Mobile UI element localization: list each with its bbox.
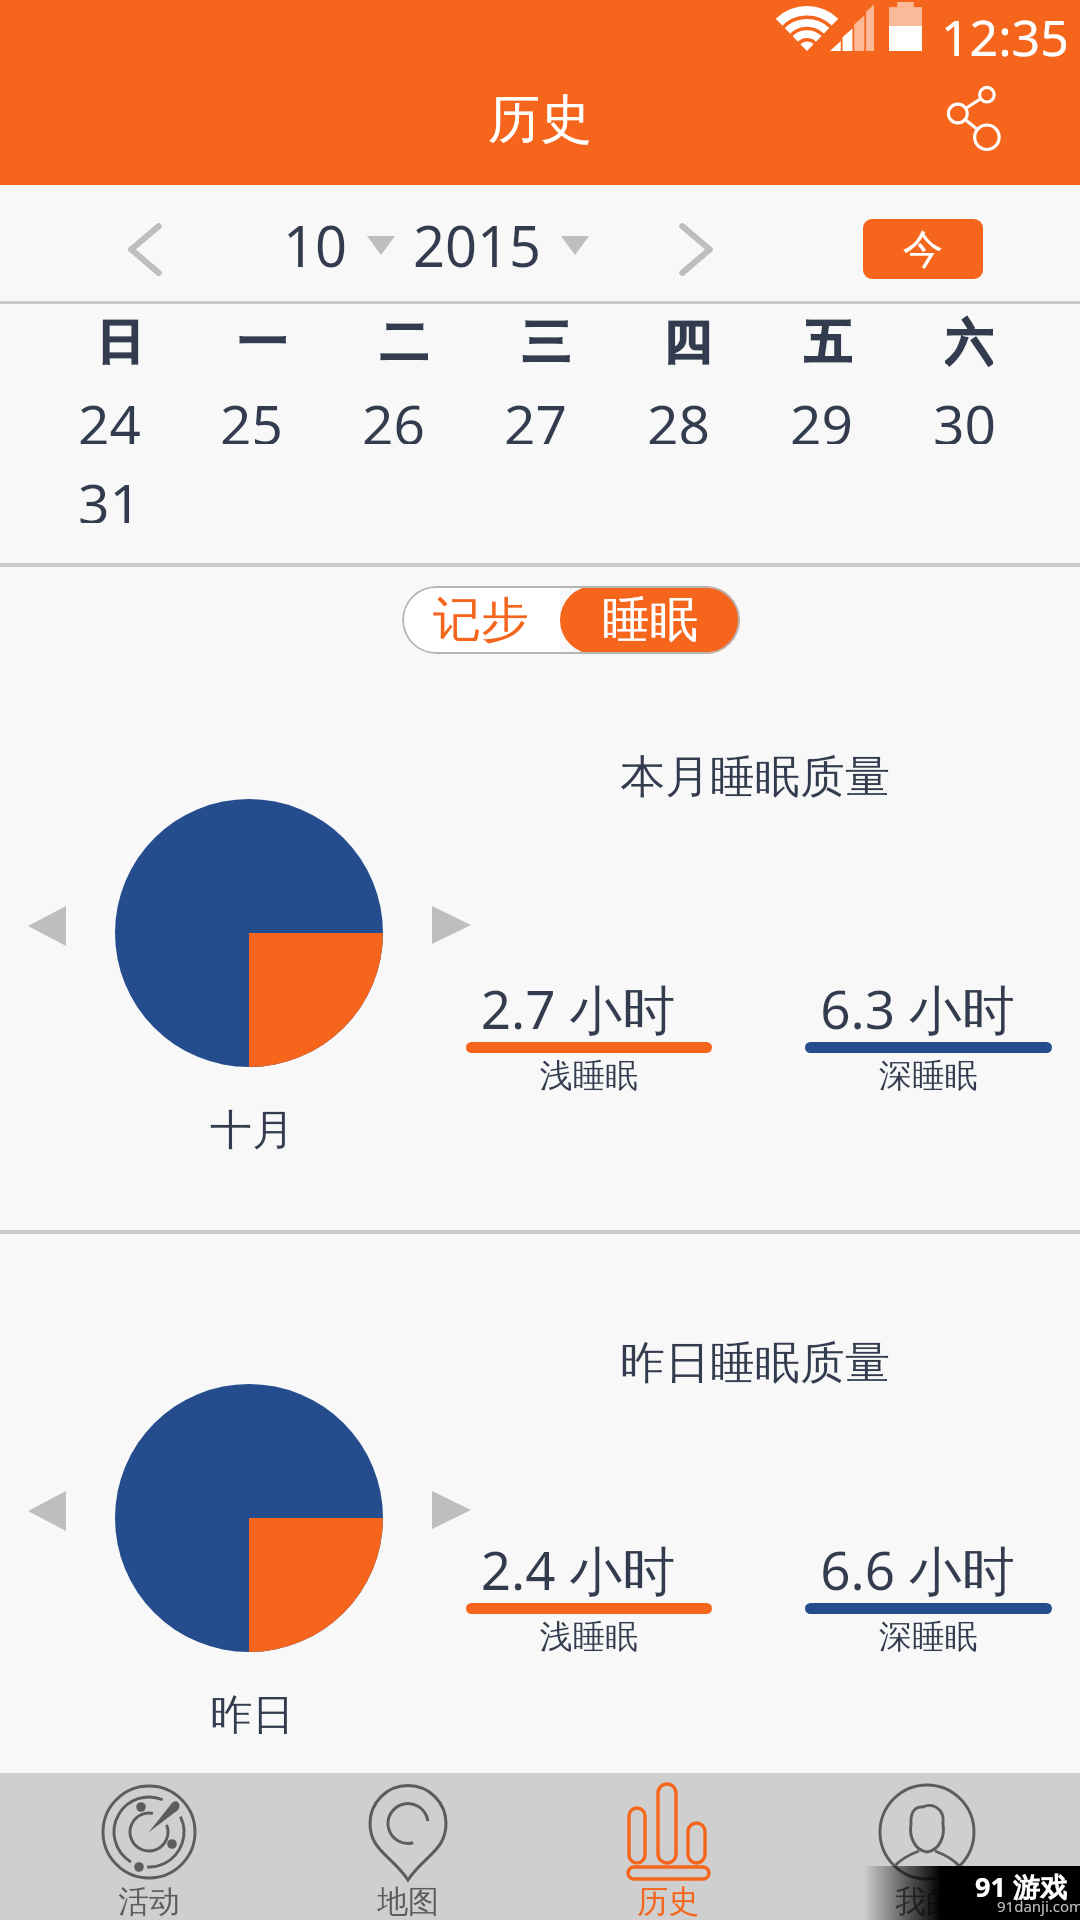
staticText: 历史	[488, 87, 592, 153]
button[interactable]: Previous	[28, 906, 66, 946]
button[interactable]: 一	[191, 313, 333, 371]
staticText: 一	[238, 313, 286, 371]
button[interactable]: 睡眠	[560, 586, 740, 654]
button[interactable]: Next month	[640, 203, 752, 295]
staticText: 活动	[89, 1882, 209, 1920]
button[interactable]: Share	[950, 55, 1080, 185]
staticText: 25	[220, 386, 283, 444]
button[interactable]: 10	[275, 199, 395, 291]
button[interactable]: 29	[750, 386, 893, 444]
staticText: 记步	[433, 590, 529, 650]
button[interactable]: 历史	[540, 1773, 810, 1920]
staticText: 30	[933, 386, 996, 444]
staticText: 历史	[608, 1882, 728, 1920]
staticText: 10	[283, 207, 348, 283]
staticText: 6.3 小时	[794, 972, 1041, 1044]
button[interactable]: 今	[863, 219, 983, 279]
button[interactable]: 三	[475, 313, 616, 371]
button[interactable]: 25	[180, 386, 322, 444]
button[interactable]: 26	[322, 386, 464, 444]
staticText: 深睡眠	[805, 1055, 1052, 1097]
staticText: 26	[362, 386, 425, 444]
staticText: 2.7 小时	[455, 972, 701, 1044]
button[interactable]: 28	[607, 386, 750, 444]
staticText: 六	[945, 313, 993, 371]
staticText: 我的	[866, 1882, 986, 1920]
button[interactable]: Next	[432, 1491, 471, 1529]
staticText: 昨日	[118, 1689, 386, 1742]
button[interactable]: 我的	[810, 1773, 1080, 1920]
button[interactable]: 五	[757, 313, 898, 371]
staticText: 27	[504, 386, 567, 444]
staticText: 十月	[118, 1104, 386, 1157]
staticText: 地图	[348, 1882, 468, 1920]
staticText: 31	[78, 465, 141, 523]
button[interactable]: Next	[432, 906, 471, 944]
button[interactable]: Previous month	[89, 203, 201, 295]
staticText: 浅睡眠	[466, 1055, 712, 1097]
button[interactable]: 30	[893, 386, 1036, 444]
button[interactable]: 31	[38, 465, 180, 523]
staticText: 24	[78, 386, 141, 444]
staticText: 日	[96, 313, 144, 371]
staticText: 91 游戏	[975, 1868, 1067, 1905]
staticText: 28	[647, 386, 710, 444]
staticText: 6.6 小时	[794, 1533, 1041, 1605]
button[interactable]: 六	[898, 313, 1039, 371]
staticText: 三	[522, 313, 570, 371]
button[interactable]: 日	[49, 313, 191, 371]
staticText: 2.4 小时	[455, 1533, 701, 1605]
button[interactable]: 记步	[402, 586, 560, 654]
button[interactable]: 四	[616, 313, 757, 371]
staticText: 12:35	[941, 3, 1069, 71]
staticText: 浅睡眠	[466, 1616, 712, 1658]
staticText: 今	[903, 224, 943, 274]
button[interactable]: 2015	[410, 199, 589, 291]
button[interactable]: 二	[333, 313, 475, 371]
button[interactable]: Previous	[28, 1491, 66, 1531]
staticText: 29	[790, 386, 853, 444]
staticText: 2015	[413, 207, 542, 283]
button[interactable]: 27	[464, 386, 607, 444]
button[interactable]: 24	[38, 386, 180, 444]
staticText: 91danji.com	[997, 1896, 1080, 1916]
button[interactable]: 活动	[0, 1773, 270, 1920]
staticText: 二	[380, 313, 428, 371]
staticText: 本月睡眠质量	[620, 749, 890, 806]
staticText: 睡眠	[602, 590, 698, 650]
button[interactable]: 地图	[270, 1773, 540, 1920]
staticText: 五	[804, 313, 852, 371]
staticText: 深睡眠	[805, 1616, 1052, 1658]
staticText: 四	[663, 313, 711, 371]
staticText: 昨日睡眠质量	[620, 1335, 890, 1392]
